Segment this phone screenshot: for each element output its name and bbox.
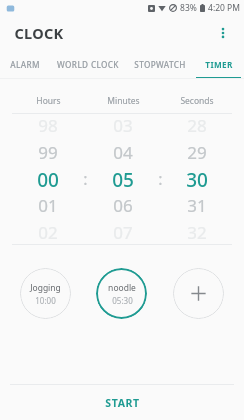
button[interactable]: Minutes bbox=[85, 113, 161, 245]
button[interactable]: START bbox=[0, 385, 244, 420]
staticText: START bbox=[105, 396, 140, 410]
staticText: 98 bbox=[38, 114, 58, 137]
staticText: 4:20 PM bbox=[208, 2, 240, 14]
staticText: CLOCK bbox=[14, 23, 64, 43]
staticText: 06 bbox=[113, 194, 133, 217]
staticText: 29 bbox=[187, 141, 207, 164]
button[interactable]: TIMER bbox=[193, 50, 244, 79]
button[interactable]: noodle bbox=[96, 268, 147, 319]
button[interactable]: WORLD CLOCK bbox=[50, 50, 126, 79]
button[interactable]: Jogging bbox=[20, 268, 71, 319]
button[interactable]: More options bbox=[210, 20, 236, 46]
staticText: 83% bbox=[180, 2, 197, 14]
button[interactable]: STOPWATCH bbox=[126, 50, 193, 79]
staticText: STOPWATCH bbox=[134, 59, 186, 70]
button[interactable]: Seconds bbox=[159, 113, 235, 245]
staticText: WORLD CLOCK bbox=[57, 59, 119, 70]
staticText: : bbox=[83, 168, 88, 190]
staticText: 30 bbox=[186, 167, 208, 192]
staticText: 10:00 bbox=[35, 295, 56, 306]
staticText: 00 bbox=[37, 167, 59, 192]
staticText: noodle bbox=[108, 282, 136, 294]
staticText: 07 bbox=[113, 221, 133, 244]
staticText: 31 bbox=[187, 194, 207, 217]
button[interactable]: Add timer preset bbox=[173, 268, 224, 319]
staticText: Hours bbox=[36, 95, 61, 107]
staticText: 99 bbox=[38, 141, 58, 164]
staticText: 28 bbox=[187, 114, 207, 137]
staticText: Seconds bbox=[180, 95, 214, 107]
staticText: 01 bbox=[38, 194, 58, 217]
staticText: TIMER bbox=[205, 59, 233, 70]
staticText: 04 bbox=[113, 141, 133, 164]
staticText: Minutes bbox=[107, 95, 140, 107]
staticText: 03 bbox=[113, 114, 133, 137]
button[interactable]: ALARM bbox=[0, 50, 50, 79]
staticText: ALARM bbox=[10, 59, 40, 70]
staticText: Jogging bbox=[30, 282, 61, 294]
button[interactable]: CLOCK bbox=[14, 23, 64, 43]
staticText: 32 bbox=[187, 221, 207, 244]
staticText: : bbox=[158, 168, 163, 190]
button[interactable]: Hours bbox=[10, 113, 86, 245]
staticText: 02 bbox=[38, 221, 58, 244]
staticText: 05 bbox=[112, 167, 134, 192]
staticText: 05:30 bbox=[112, 295, 133, 306]
